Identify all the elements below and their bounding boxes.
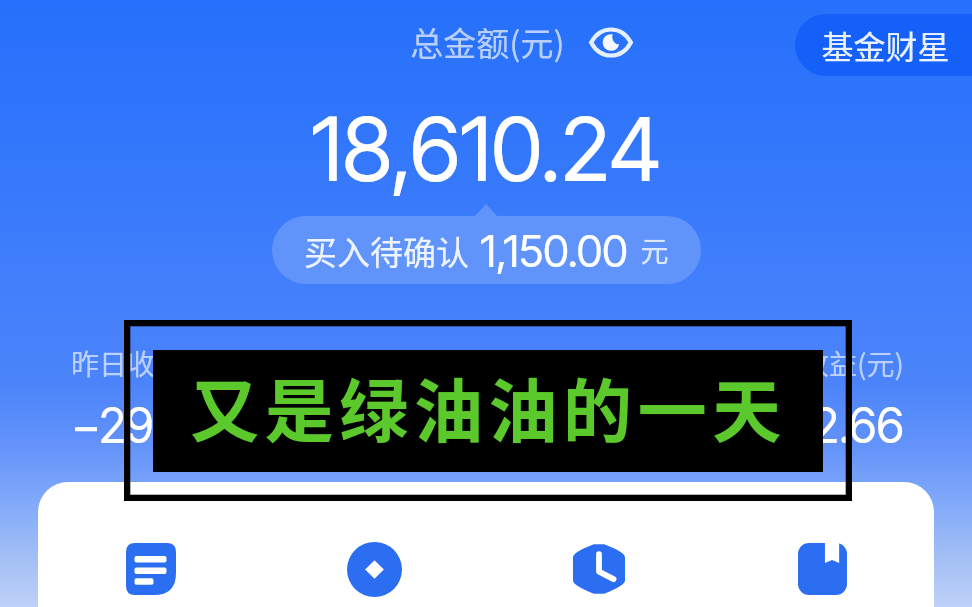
button[interactable]: 理财: [336, 531, 412, 607]
button[interactable]: 基金财星: [795, 14, 972, 76]
button[interactable]: 买入待确认: [272, 216, 701, 284]
staticText: 1,150.00: [480, 224, 628, 277]
button[interactable]: 文档: [113, 531, 189, 607]
staticText: 买入待确认: [304, 227, 469, 275]
staticText: −29.40: [71, 396, 220, 454]
staticText: 元: [640, 230, 669, 271]
staticText: 18,610.24: [311, 96, 661, 202]
staticText: 昨日收益(元): [71, 343, 230, 384]
staticText: 总金额(元): [410, 18, 565, 66]
staticText: 持有收益(元): [745, 343, 904, 384]
button[interactable]: 显示金额: [589, 27, 633, 58]
button[interactable]: 历史: [561, 531, 637, 607]
staticText: −132.66: [737, 396, 904, 454]
staticText: 又是绿油油的一天: [190, 357, 787, 457]
staticText: 基金财星: [821, 22, 950, 68]
button[interactable]: 收藏: [784, 531, 860, 607]
